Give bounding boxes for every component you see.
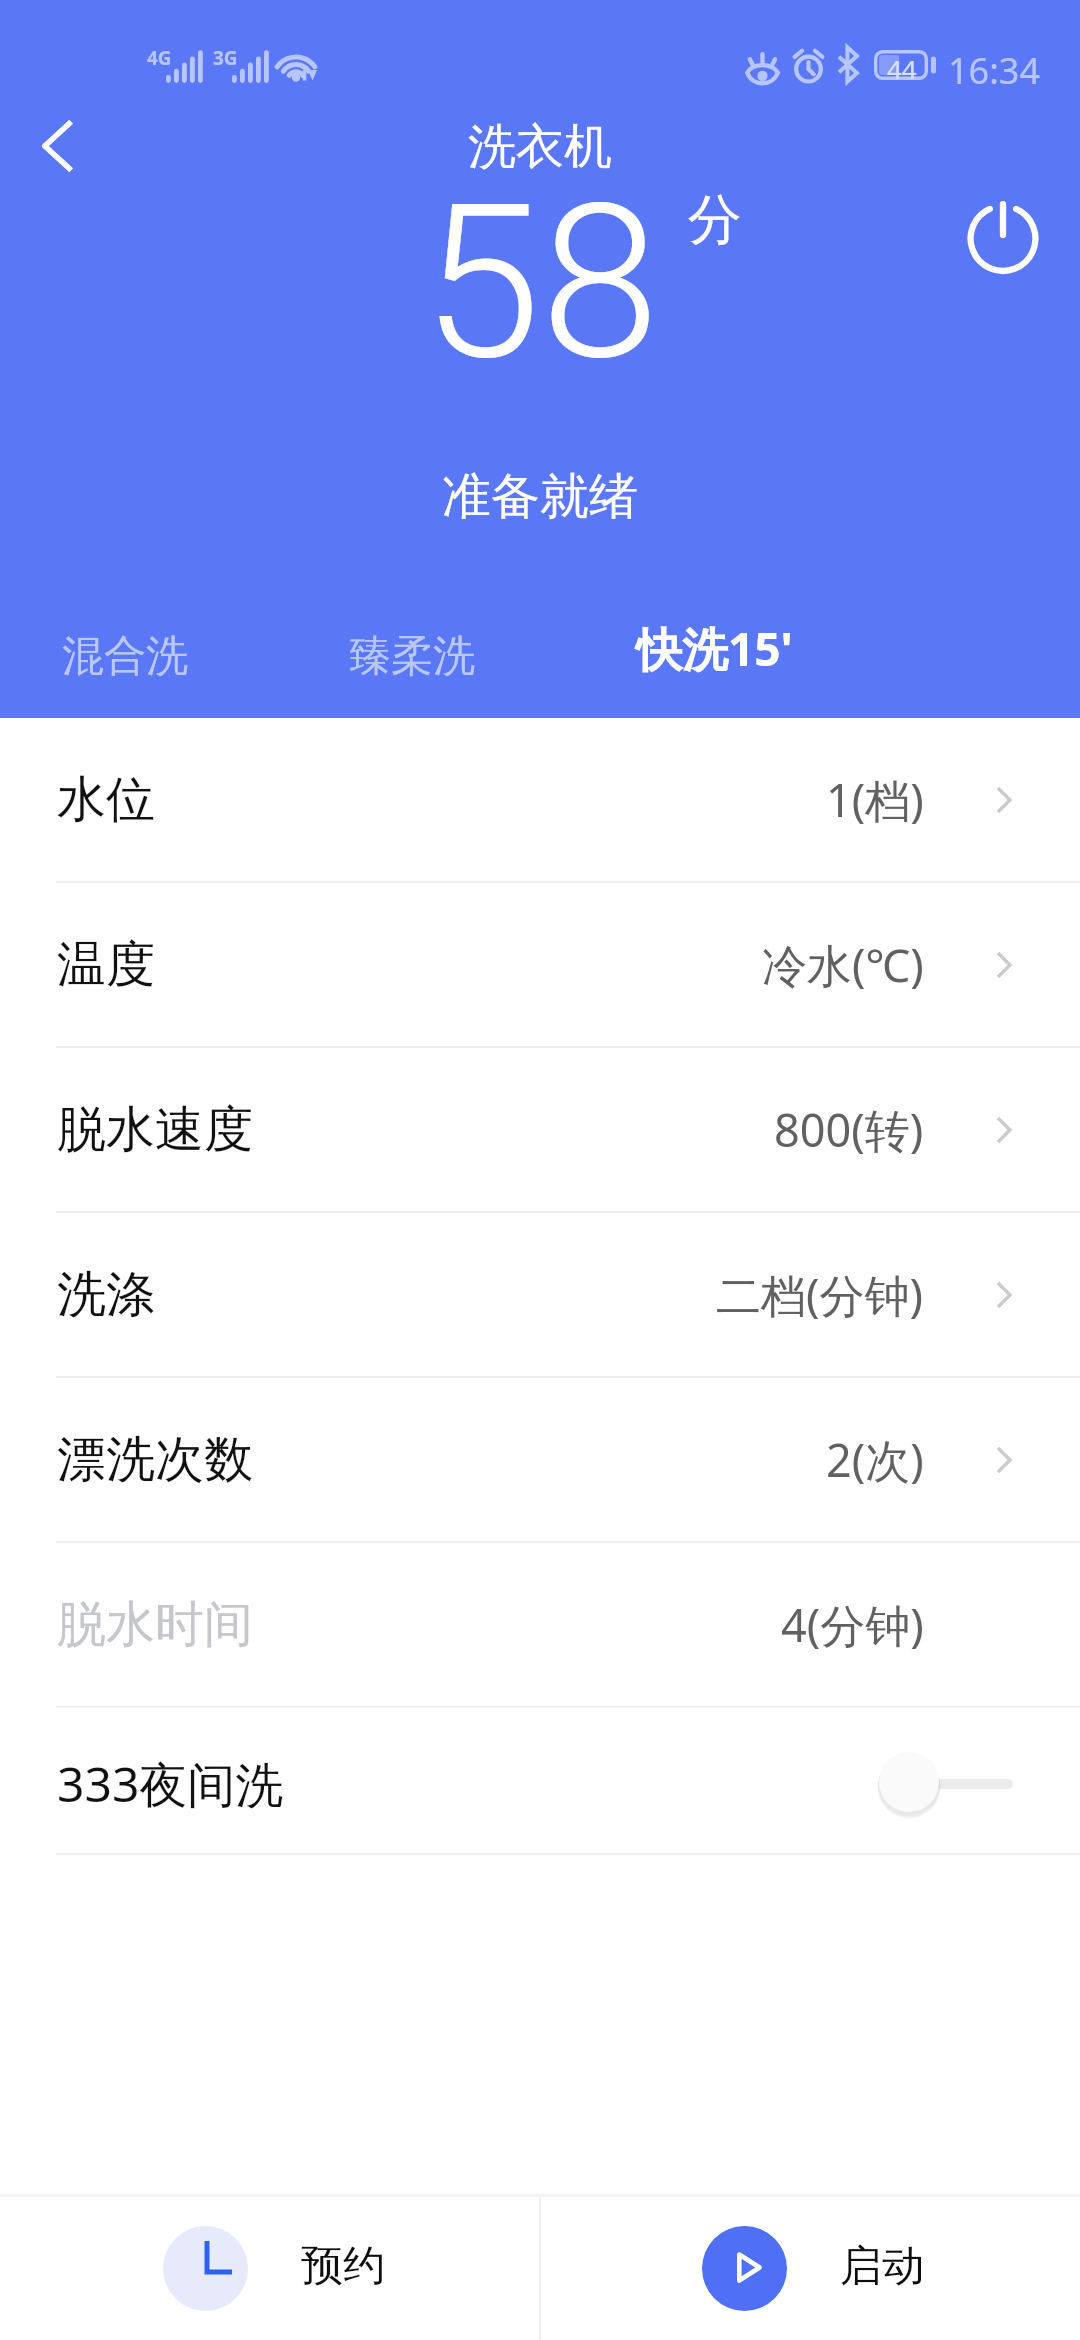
button[interactable]: 水位 bbox=[0, 718, 1080, 881]
button[interactable]: 快洗15' bbox=[618, 607, 811, 690]
staticText: 脱水速度 bbox=[57, 1099, 253, 1161]
staticText: 44 bbox=[887, 51, 917, 81]
button[interactable]: 脱水时间 bbox=[0, 1543, 1080, 1706]
button[interactable]: Power bbox=[955, 189, 1051, 285]
button[interactable]: 漂洗次数 bbox=[0, 1378, 1080, 1541]
staticText: 58 bbox=[422, 157, 660, 408]
staticText: 混合洗 bbox=[62, 630, 188, 683]
staticText: 800(转) bbox=[774, 1099, 924, 1160]
button[interactable]: 混合洗 bbox=[44, 620, 206, 693]
button[interactable]: 333夜间洗 bbox=[0, 1708, 1080, 1853]
staticText: 16:34 bbox=[948, 46, 1041, 95]
staticText: 洗涤 bbox=[57, 1264, 155, 1326]
button[interactable]: 洗涤 bbox=[0, 1213, 1080, 1376]
button[interactable]: 脱水速度 bbox=[0, 1048, 1080, 1211]
button[interactable]: 启动 bbox=[541, 2197, 1080, 2340]
staticText: 1(档) bbox=[826, 769, 924, 830]
staticText: 分 bbox=[688, 186, 742, 254]
staticText: 3G bbox=[213, 45, 238, 71]
staticText: 2(次) bbox=[826, 1429, 924, 1490]
staticText: 4(分钟) bbox=[781, 1594, 924, 1655]
staticText: 333夜间洗 bbox=[57, 1751, 284, 1817]
staticText: 准备就绪 bbox=[0, 466, 1080, 528]
staticText: 温度 bbox=[57, 934, 155, 996]
button[interactable]: 温度 bbox=[0, 883, 1080, 1046]
button[interactable]: 预约 bbox=[0, 2197, 539, 2340]
staticText: 臻柔洗 bbox=[349, 630, 475, 683]
button[interactable]: 臻柔洗 bbox=[331, 620, 493, 693]
staticText: 启动 bbox=[840, 2240, 924, 2293]
staticText: 预约 bbox=[301, 2240, 385, 2293]
staticText: 洗衣机 bbox=[0, 117, 1080, 177]
staticText: 冷水(℃) bbox=[762, 934, 924, 995]
staticText: 脱水时间 bbox=[57, 1594, 253, 1656]
staticText: 漂洗次数 bbox=[57, 1429, 253, 1491]
staticText: 二档(分钟) bbox=[716, 1264, 924, 1325]
staticText: 水位 bbox=[57, 769, 155, 831]
staticText: 快洗15' bbox=[636, 617, 793, 680]
staticText: 4G bbox=[147, 45, 172, 71]
button[interactable]: Back bbox=[10, 98, 106, 194]
